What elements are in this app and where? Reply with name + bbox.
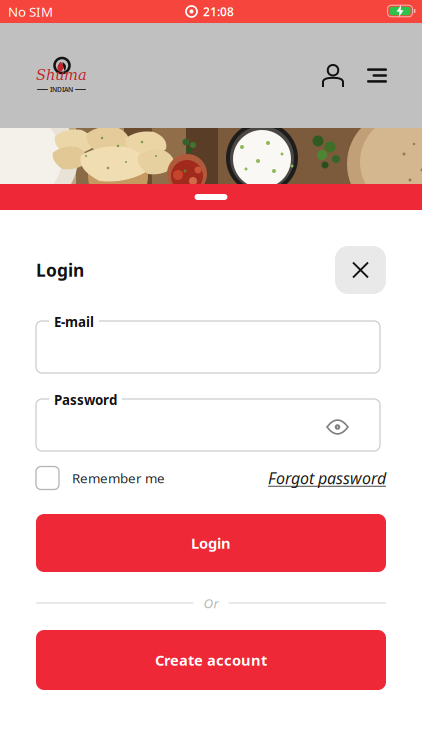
staticText: Password xyxy=(54,391,117,409)
button[interactable]: Menu xyxy=(355,53,399,98)
staticText: E-mail xyxy=(54,313,94,331)
button[interactable]: Login xyxy=(36,514,386,572)
staticText: Login xyxy=(191,533,231,553)
button[interactable]: Forgot password xyxy=(268,467,386,489)
staticText: Remember me xyxy=(72,469,165,487)
staticText: Forgot password xyxy=(268,467,386,489)
staticText: Login xyxy=(36,258,84,281)
staticText: INDIAN xyxy=(50,85,73,94)
staticText: 21:08 xyxy=(203,3,234,19)
button[interactable]: Create account xyxy=(36,630,386,690)
button[interactable]: Close xyxy=(335,246,386,294)
staticText: Or xyxy=(203,594,218,612)
button[interactable]: Account xyxy=(311,53,355,98)
staticText: No SIM xyxy=(8,3,53,20)
staticText: Shuma xyxy=(36,66,87,84)
button[interactable]: Remember me xyxy=(36,466,165,489)
staticText: Create account xyxy=(155,650,267,670)
